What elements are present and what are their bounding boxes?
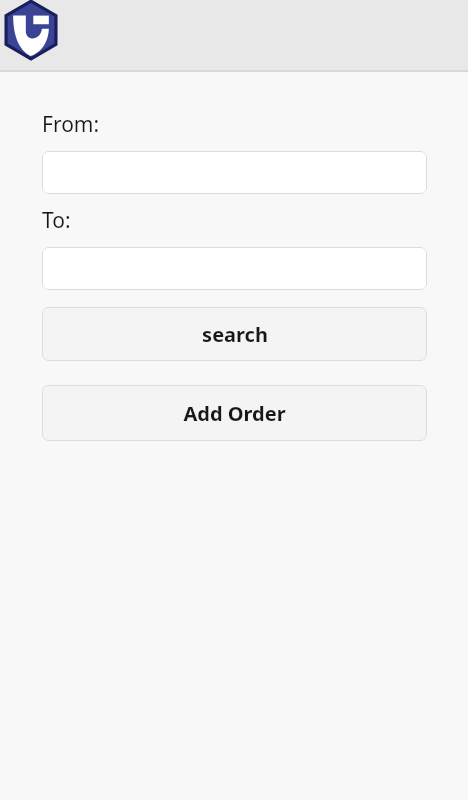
- staticText: search: [202, 321, 268, 348]
- button[interactable]: Text input: [42, 151, 427, 194]
- button[interactable]: Add Order: [42, 385, 427, 441]
- staticText: To:: [42, 206, 71, 235]
- staticText: From:: [42, 110, 100, 139]
- button[interactable]: App logo, home: [1, 0, 61, 60]
- button[interactable]: Text input: [42, 247, 427, 290]
- staticText: Add Order: [183, 400, 286, 427]
- button[interactable]: search: [42, 307, 427, 361]
